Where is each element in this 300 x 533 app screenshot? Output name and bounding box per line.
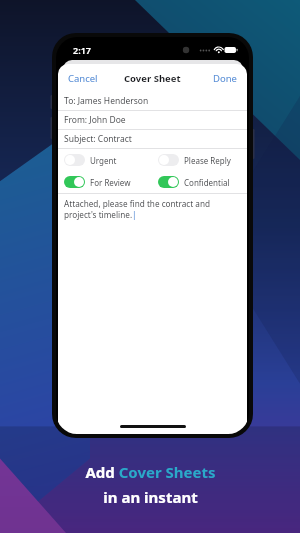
staticText: To: James Henderson	[64, 95, 149, 107]
staticText: 2:17	[73, 44, 91, 56]
staticText: Confidential	[184, 177, 230, 188]
staticText: Attached, please find the contract and p…	[64, 198, 239, 220]
button[interactable]: Done	[203, 67, 247, 90]
staticText: Please Reply	[184, 155, 231, 166]
staticText: Urgent	[90, 155, 117, 166]
staticText: Subject: Contract	[64, 133, 132, 145]
staticText: For Review	[90, 177, 131, 188]
button[interactable]: For Review	[58, 174, 152, 190]
staticText: Done	[213, 72, 237, 85]
button[interactable]: Cancel	[58, 67, 108, 90]
button[interactable]: From: John Doe	[58, 111, 247, 129]
staticText: From: John Doe	[64, 114, 126, 126]
staticText: in an instant	[103, 487, 198, 507]
staticText: Cover Sheet	[124, 72, 181, 85]
button[interactable]: Urgent	[58, 152, 152, 168]
button[interactable]: Please Reply	[152, 152, 247, 168]
button[interactable]: Subject: Contract	[58, 130, 247, 148]
button[interactable]: To: James Henderson	[58, 92, 247, 110]
staticText: Add Cover Sheets	[85, 462, 216, 482]
button[interactable]: Confidential	[152, 174, 247, 190]
staticText: Cancel	[68, 72, 98, 85]
